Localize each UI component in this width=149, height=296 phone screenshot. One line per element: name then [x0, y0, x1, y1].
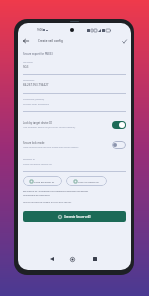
staticText: Veil name [23, 61, 33, 64]
button[interactable]: Recents [90, 254, 100, 264]
button[interactable]: Paste Recipient ID [23, 176, 62, 186]
staticText: c9dc5e58dc544c0260032 [23, 194, 50, 197]
staticText: Create veil config [38, 39, 63, 43]
button[interactable]: Copy My Device ID [66, 176, 107, 186]
staticText: Hide SmartPhone veil lock usage with oth… [23, 146, 79, 149]
button[interactable]: Destination [23, 79, 126, 94]
staticText: 84.267.953.794427 [23, 83, 49, 87]
button[interactable]: Lock by target device ID [23, 121, 126, 129]
button[interactable]: Passphrase (optional) [23, 98, 126, 112]
staticText: Protect with password [23, 102, 50, 105]
staticText: Use recipient device ID (not your curren… [23, 126, 76, 129]
staticText: Lock by target device ID [23, 121, 53, 125]
staticText: Big Device ID: dcdabdde1f307daff83f2c025… [23, 190, 89, 193]
button[interactable]: Save [119, 36, 129, 46]
staticText: SG3 [23, 65, 29, 69]
staticText: 9:06 [37, 28, 43, 32]
button[interactable]: Back [21, 36, 31, 46]
button[interactable]: Home [67, 254, 77, 264]
staticText: Destination [23, 79, 35, 82]
staticText: Paste Recipient ID [34, 180, 55, 183]
button[interactable]: Secure lock mode [23, 141, 126, 149]
staticText: Veil ID hint will be locked. 84.247.553.… [23, 201, 72, 204]
staticText: Generate Secure veil() [64, 215, 91, 219]
button[interactable]: Generate Secure veil() [23, 211, 126, 222]
staticText: Secure export for FME33 [23, 52, 53, 56]
staticText: Copy My Device ID [78, 180, 99, 183]
staticText: Secure lock mode [23, 141, 45, 145]
button[interactable]: Back [47, 254, 57, 264]
button[interactable]: Recipient ID [23, 158, 126, 172]
staticText: Recipient ID [23, 158, 35, 161]
button[interactable]: Veil name [23, 61, 126, 75]
staticText: Paste recipient device ID [23, 162, 52, 165]
staticText: Passphrase (optional) [23, 98, 45, 101]
